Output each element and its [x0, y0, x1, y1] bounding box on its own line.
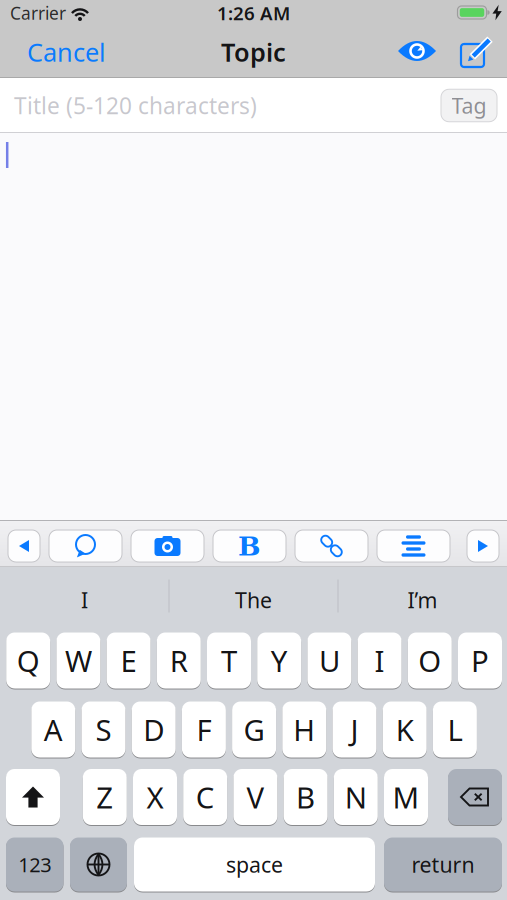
button[interactable]: H	[282, 701, 326, 758]
button[interactable]: A	[31, 701, 75, 758]
button[interactable]: K	[383, 701, 427, 758]
button[interactable]: I’m	[342, 578, 502, 622]
staticText: A	[44, 710, 63, 749]
button[interactable]: Cancel	[27, 37, 123, 67]
button[interactable]: return	[384, 837, 502, 892]
button[interactable]: Delete	[448, 769, 502, 826]
staticText: Y	[271, 641, 288, 680]
button[interactable]: I	[358, 632, 402, 689]
staticText: 123	[18, 851, 51, 878]
button[interactable]: J	[332, 701, 376, 758]
button[interactable]: Next	[467, 530, 499, 562]
staticText: K	[396, 710, 414, 749]
button[interactable]: The	[173, 578, 333, 622]
button[interactable]: V	[233, 769, 277, 826]
staticText: V	[246, 777, 264, 816]
button[interactable]: Camera	[131, 530, 204, 562]
button[interactable]: T	[207, 632, 251, 689]
button[interactable]: E	[107, 632, 151, 689]
button[interactable]: Preview	[395, 33, 439, 69]
button[interactable]: Quote	[49, 530, 122, 562]
button[interactable]: S	[81, 701, 125, 758]
button[interactable]: X	[133, 769, 177, 826]
staticText: O	[418, 641, 441, 680]
button[interactable]: N	[334, 769, 378, 826]
button[interactable]: R	[157, 632, 201, 689]
staticText: R	[170, 641, 188, 680]
staticText: B	[238, 530, 261, 562]
staticText: Title (5-120 characters)	[14, 90, 257, 120]
button[interactable]: Link	[295, 530, 368, 562]
button[interactable]: M	[384, 769, 428, 826]
staticText: H	[293, 710, 315, 749]
button[interactable]: O	[408, 632, 452, 689]
staticText: 1:26 AM	[217, 1, 290, 25]
staticText: W	[65, 641, 92, 680]
button[interactable]: space	[134, 837, 375, 892]
staticText: T	[221, 641, 237, 680]
staticText: G	[244, 710, 265, 749]
button[interactable]: L	[433, 701, 477, 758]
staticText: B	[296, 777, 315, 816]
button[interactable]: Compose	[457, 32, 497, 70]
button[interactable]: Previous	[8, 530, 40, 562]
staticText: C	[196, 777, 215, 816]
button[interactable]: Format	[377, 530, 450, 562]
button[interactable]: 123	[6, 837, 63, 892]
button[interactable]: Next keyboard	[70, 837, 127, 892]
staticText: space	[226, 850, 283, 879]
staticText: F	[196, 710, 211, 749]
staticText: E	[121, 641, 137, 680]
staticText: I	[81, 586, 88, 614]
staticText: The	[235, 586, 272, 614]
button[interactable]: D	[132, 701, 176, 758]
button[interactable]: G	[232, 701, 276, 758]
button[interactable]: Z	[83, 769, 127, 826]
staticText: I’m	[407, 586, 437, 614]
staticText: Tag	[451, 91, 486, 120]
staticText: U	[319, 641, 340, 680]
button[interactable]: Shift	[6, 769, 60, 826]
staticText: Q	[17, 641, 40, 680]
button[interactable]: P	[458, 632, 502, 689]
staticText: X	[146, 777, 163, 816]
staticText: Topic	[221, 35, 286, 69]
button[interactable]: W	[56, 632, 100, 689]
button[interactable]: U	[307, 632, 351, 689]
button[interactable]: F	[182, 701, 226, 758]
staticText: Cancel	[27, 35, 106, 69]
button[interactable]: Bold	[213, 530, 286, 562]
staticText: J	[350, 710, 358, 749]
staticText: D	[143, 710, 164, 749]
staticText: M	[392, 777, 419, 816]
staticText: S	[95, 710, 111, 749]
staticText: N	[345, 777, 367, 816]
button[interactable]: C	[183, 769, 227, 826]
staticText: Carrier	[10, 1, 66, 24]
button[interactable]: Q	[6, 632, 50, 689]
staticText: Z	[96, 777, 113, 816]
staticText: I	[375, 641, 385, 680]
staticText: P	[471, 641, 489, 680]
button[interactable]: Tag	[441, 89, 497, 122]
staticText: L	[447, 710, 462, 749]
staticText: return	[411, 850, 474, 879]
button[interactable]: Y	[257, 632, 301, 689]
button[interactable]: B	[284, 769, 328, 826]
button[interactable]: I	[4, 578, 164, 622]
